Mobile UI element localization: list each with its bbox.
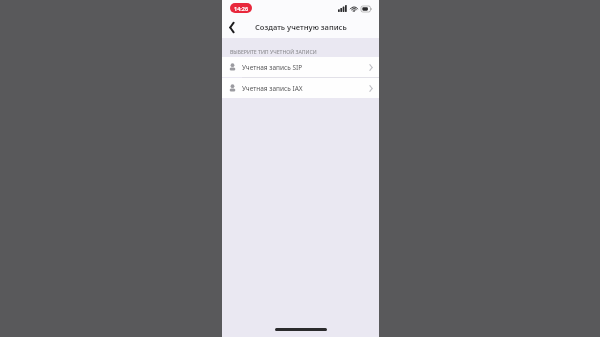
- staticText: ВЫБЕРИТЕ ТИП УЧЕТНОЙ ЗАПИСИ: [230, 48, 317, 55]
- staticText: Учетная запись SIP: [242, 63, 303, 72]
- button[interactable]: Учетная запись IAX: [222, 78, 379, 98]
- staticText: 14:26: [234, 5, 249, 12]
- button[interactable]: Учетная запись SIP: [222, 57, 379, 77]
- staticText: Учетная запись IAX: [242, 84, 303, 93]
- staticText: Создать учетную запись: [255, 22, 347, 32]
- button[interactable]: Назад: [222, 16, 242, 38]
